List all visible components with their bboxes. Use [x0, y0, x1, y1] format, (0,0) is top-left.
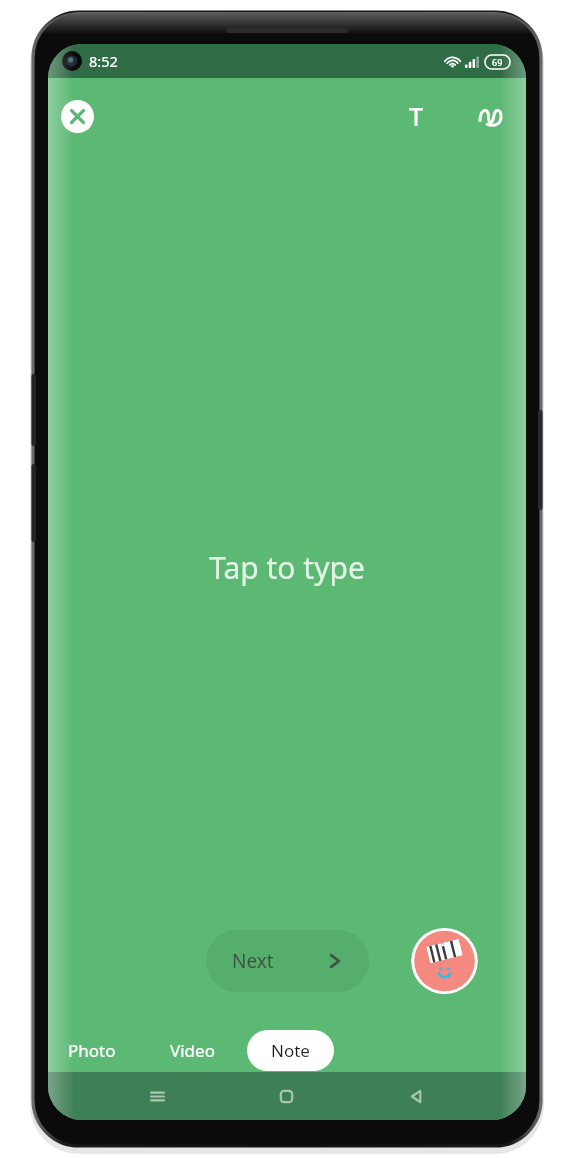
button[interactable]: Close — [61, 100, 94, 133]
button[interactable]: Photo — [56, 1030, 128, 1071]
button[interactable]: Draw — [472, 96, 512, 136]
staticText: Video — [170, 1039, 215, 1062]
staticText: 8:52 — [89, 51, 118, 71]
button[interactable]: Tap to type — [183, 535, 391, 600]
button[interactable]: Back — [396, 1076, 436, 1116]
staticText: Tap to type — [209, 547, 365, 588]
staticText: 69 — [492, 56, 503, 68]
button[interactable]: Next — [206, 930, 369, 992]
button[interactable]: Note — [247, 1030, 334, 1071]
button[interactable]: Home — [266, 1076, 306, 1116]
staticText: Photo — [68, 1039, 116, 1062]
staticText: Next — [232, 948, 274, 974]
button[interactable]: Recents — [137, 1076, 177, 1116]
staticText: T — [409, 99, 424, 133]
staticText: Note — [271, 1039, 310, 1062]
button[interactable]: Text — [396, 96, 436, 136]
button[interactable]: Sticker — [411, 928, 478, 994]
button[interactable]: Video — [158, 1030, 227, 1071]
